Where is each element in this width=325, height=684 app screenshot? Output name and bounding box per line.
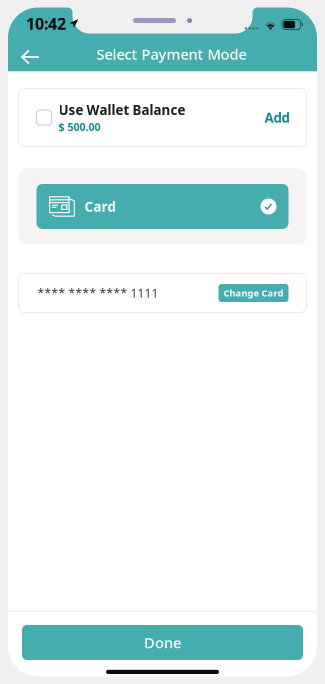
button[interactable]: Back [8, 33, 61, 71]
button[interactable]: Use Wallet Balance [18, 88, 306, 146]
staticText: **** **** **** 1111 [37, 285, 158, 301]
staticText: Card [84, 198, 115, 215]
staticText: $ 500.00 [58, 120, 100, 134]
button[interactable]: Done [22, 625, 303, 660]
staticText: 10:42 [26, 13, 66, 34]
staticText: Add [264, 109, 289, 126]
staticText: Change Card [223, 287, 283, 299]
staticText: Select Payment Mode [96, 44, 246, 64]
button[interactable]: Change Card [218, 284, 288, 302]
button[interactable]: Card [18, 168, 306, 244]
staticText: Done [144, 633, 181, 652]
staticText: Use Wallet Balance [58, 101, 185, 119]
